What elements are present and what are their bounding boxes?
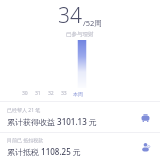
- other: 累计获得收益详情: [138, 110, 152, 124]
- staticText: 33: [61, 90, 67, 97]
- staticText: 目前已 抵扣税款: [7, 137, 44, 144]
- button[interactable]: 已经帮人 21 笔: [0, 102, 160, 132]
- staticText: /52周: [83, 18, 102, 28]
- staticText: 34: [58, 1, 82, 30]
- staticText: 32: [48, 90, 54, 97]
- staticText: 已参与理财: [66, 31, 94, 38]
- other: 累计抵税详情: [138, 140, 152, 154]
- staticText: 本周: [73, 91, 83, 97]
- staticText: 31: [35, 90, 41, 97]
- staticText: 累计抵税 1108.25 元: [7, 146, 81, 157]
- staticText: 30: [22, 90, 28, 97]
- staticText: 已经帮人 21 笔: [7, 107, 41, 114]
- button[interactable]: 目前已 抵扣税款: [0, 133, 160, 160]
- staticText: 累计获得收益 3101.13 元: [7, 116, 97, 127]
